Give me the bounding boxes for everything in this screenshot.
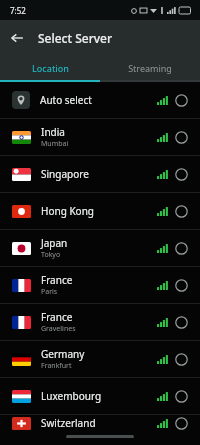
- button[interactable]: Back: [0, 21, 34, 55]
- staticText: Hong Kong: [41, 204, 94, 218]
- button[interactable]: Hong Kong: [0, 193, 200, 229]
- staticText: India: [41, 125, 65, 139]
- staticText: Tokyo: [41, 250, 61, 260]
- staticText: France: [41, 310, 73, 324]
- button[interactable]: India: [0, 119, 200, 155]
- staticText: Luxembourg: [41, 389, 102, 403]
- button[interactable]: Japan: [0, 230, 200, 266]
- button[interactable]: Singapore: [0, 156, 200, 192]
- button[interactable]: Luxembourg: [0, 378, 200, 414]
- staticText: Location: [32, 62, 69, 74]
- button[interactable]: Location: [0, 56, 100, 80]
- button[interactable]: Auto select: [0, 82, 200, 118]
- staticText: Switzerland: [41, 416, 96, 430]
- button[interactable]: Streaming: [100, 56, 200, 80]
- staticText: Select Server: [38, 30, 113, 46]
- button[interactable]: France: [0, 267, 200, 303]
- button[interactable]: Germany: [0, 341, 200, 377]
- staticText: Singapore: [41, 167, 89, 181]
- button[interactable]: France: [0, 304, 200, 340]
- staticText: Gravelines: [41, 324, 76, 334]
- staticText: Japan: [41, 236, 68, 250]
- staticText: Frankfurt: [41, 361, 72, 371]
- staticText: Auto select: [40, 93, 92, 107]
- staticText: 7:52: [10, 5, 26, 16]
- staticText: Mumbai: [41, 139, 69, 149]
- staticText: France: [41, 273, 73, 287]
- staticText: Streaming: [128, 62, 172, 74]
- staticText: Germany: [41, 347, 85, 361]
- staticText: Paris: [41, 287, 58, 297]
- button[interactable]: Switzerland: [0, 415, 200, 431]
